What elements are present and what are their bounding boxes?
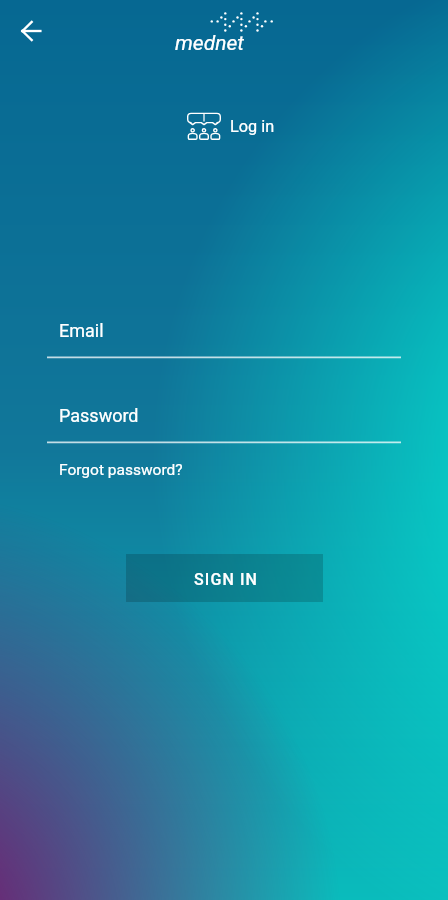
staticText: Forgot password? xyxy=(59,461,183,479)
staticText: Log in xyxy=(230,117,275,136)
button[interactable]: Log in xyxy=(187,112,275,140)
button[interactable]: Back xyxy=(10,10,52,52)
button[interactable]: SIGN IN xyxy=(126,554,323,602)
button[interactable]: Forgot password? xyxy=(59,461,183,479)
staticText: mednet xyxy=(175,31,244,56)
staticText: SIGN IN xyxy=(194,570,259,589)
staticText: Password xyxy=(59,405,139,426)
staticText: Email xyxy=(59,320,104,341)
